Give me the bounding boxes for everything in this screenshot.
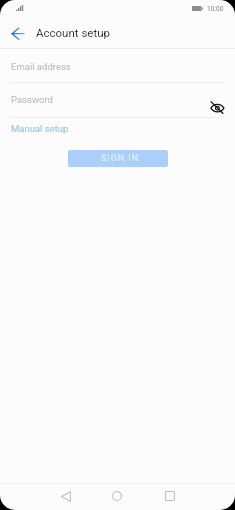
staticText: Email address bbox=[11, 61, 71, 72]
button[interactable]: Show password bbox=[206, 95, 228, 117]
staticText: SIGN IN bbox=[101, 153, 140, 164]
staticText: Account setup bbox=[36, 26, 110, 39]
button[interactable]: Manual setup bbox=[11, 123, 69, 134]
button[interactable]: Home bbox=[104, 483, 131, 510]
button[interactable]: Recent apps bbox=[156, 483, 183, 510]
button[interactable]: Email address bbox=[0, 49, 235, 82]
button[interactable]: Back bbox=[52, 483, 79, 510]
staticText: 10:00 bbox=[207, 5, 224, 13]
button[interactable]: Password bbox=[0, 83, 235, 117]
button[interactable]: SIGN IN bbox=[68, 150, 168, 167]
staticText: Password bbox=[11, 94, 53, 105]
button[interactable]: Navigate up bbox=[6, 21, 30, 45]
